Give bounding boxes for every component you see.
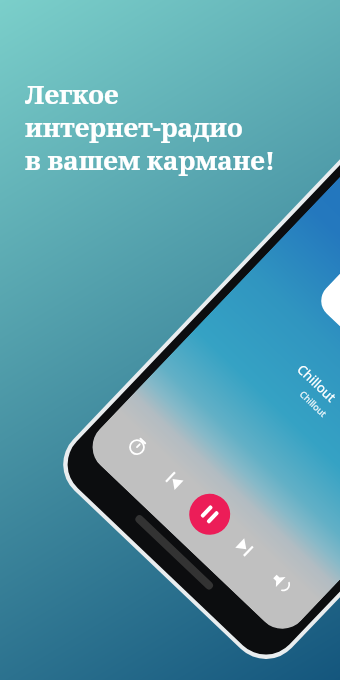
staticText: Легкое интернет-радио в вашем кармане! <box>25 76 275 178</box>
